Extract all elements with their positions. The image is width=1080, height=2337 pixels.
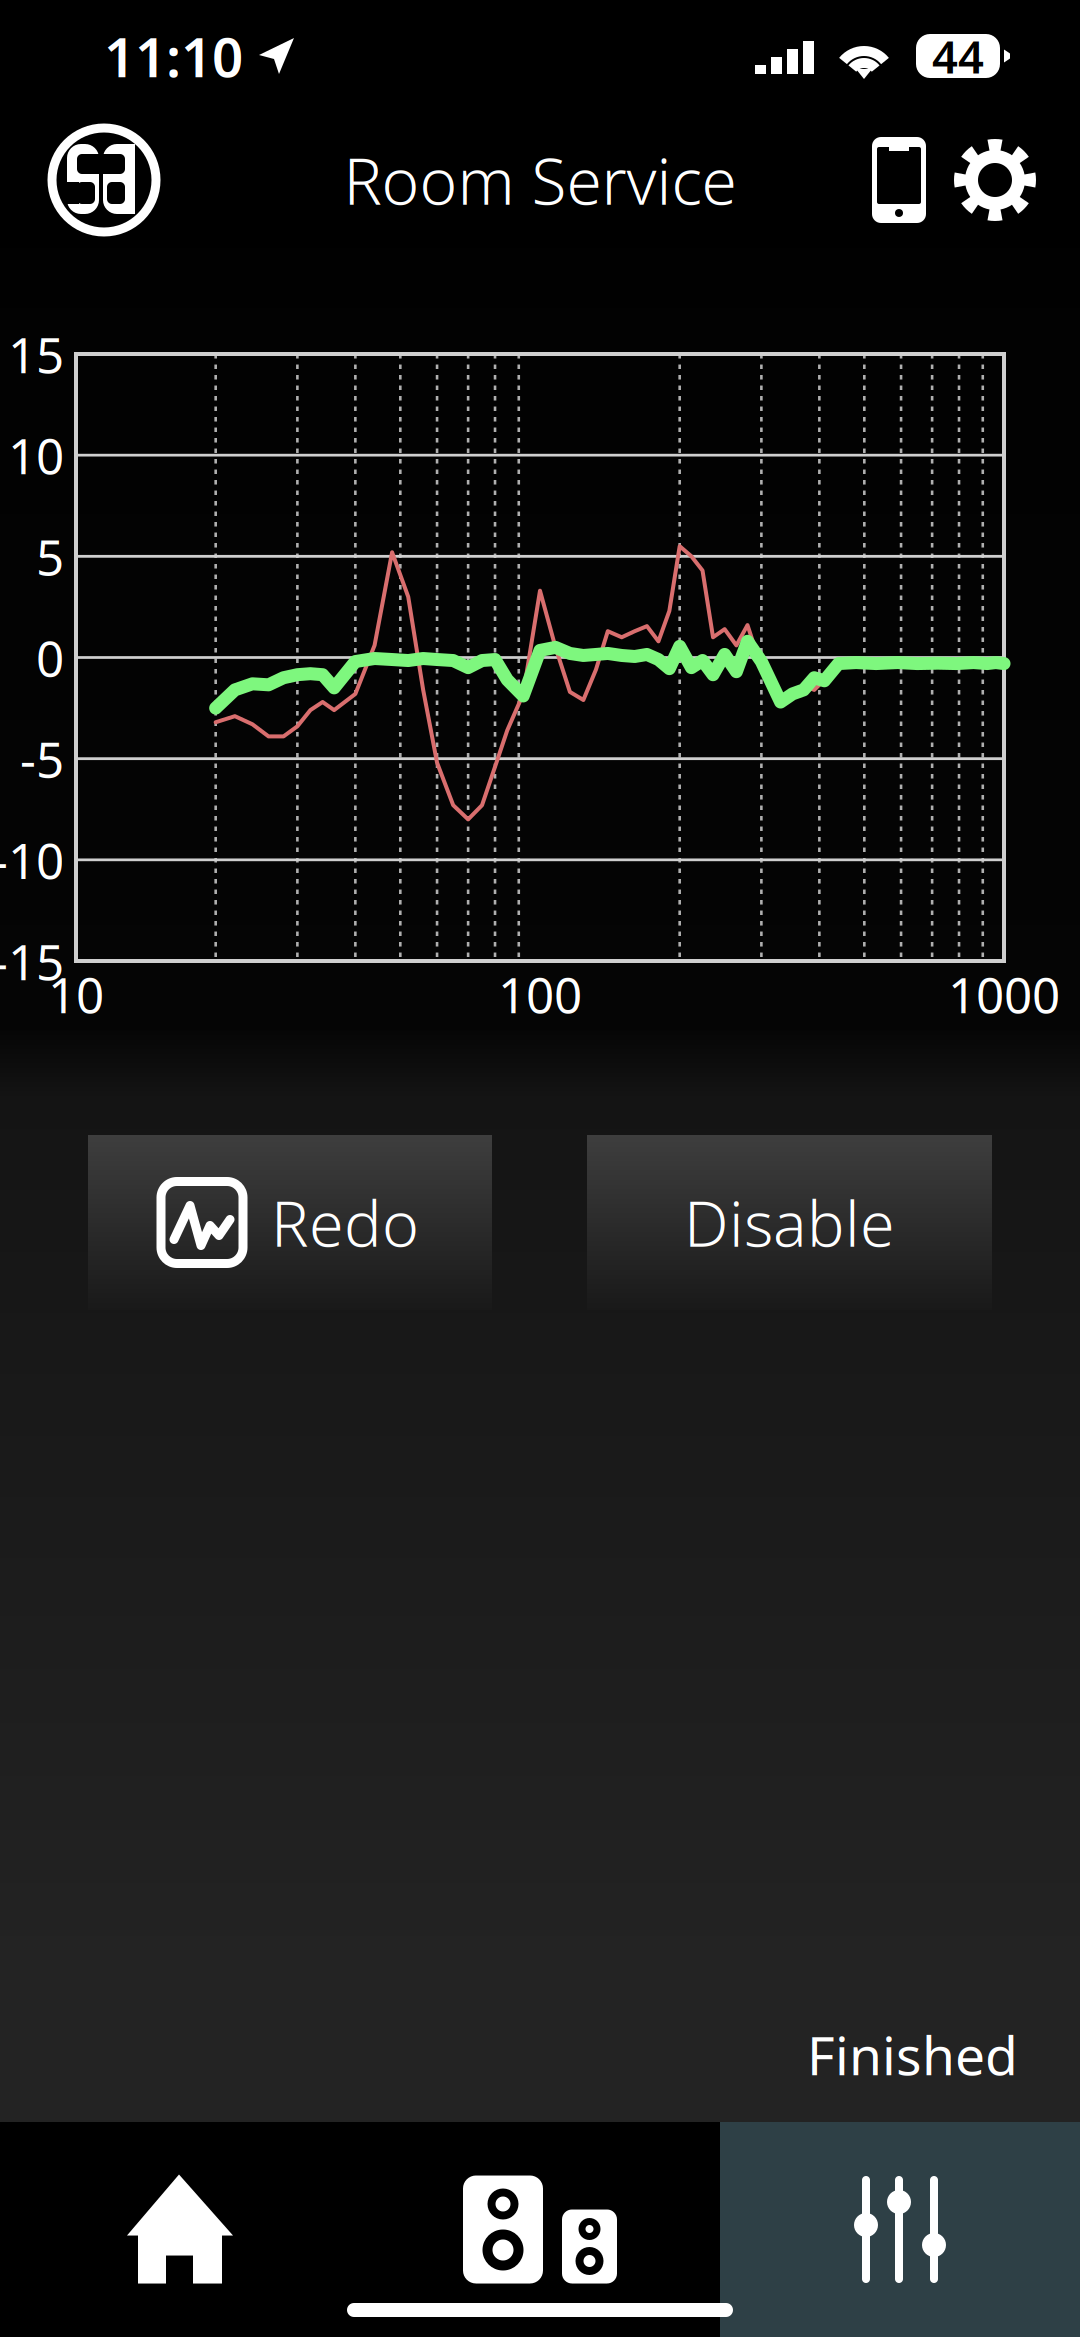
- button[interactable]: Redo: [88, 1135, 492, 1310]
- staticText: Room Service: [343, 137, 736, 222]
- button[interactable]: Equalizer: [720, 2122, 1080, 2337]
- staticText: 10: [8, 422, 64, 488]
- staticText: 44: [932, 26, 984, 86]
- button[interactable]: Settings: [928, 139, 1036, 221]
- staticText: 10: [48, 961, 104, 1027]
- staticText: 100: [498, 961, 582, 1027]
- button[interactable]: Device: [870, 135, 928, 225]
- staticText: 15: [8, 321, 64, 387]
- staticText: -10: [0, 827, 64, 893]
- staticText: 11:10: [104, 20, 243, 92]
- button[interactable]: Home: [0, 2122, 360, 2337]
- staticText: -15: [0, 928, 64, 994]
- staticText: 1000: [948, 961, 1060, 1027]
- staticText: -5: [20, 726, 64, 791]
- staticText: 0: [36, 625, 64, 690]
- staticText: Finished: [807, 2019, 1018, 2090]
- button[interactable]: Disable: [587, 1135, 992, 1310]
- button[interactable]: Speakers: [360, 2122, 720, 2337]
- staticText: Disable: [684, 1181, 895, 1264]
- staticText: Redo: [271, 1181, 419, 1264]
- button[interactable]: SA Home: [52, 128, 156, 232]
- staticText: 5: [36, 524, 64, 589]
